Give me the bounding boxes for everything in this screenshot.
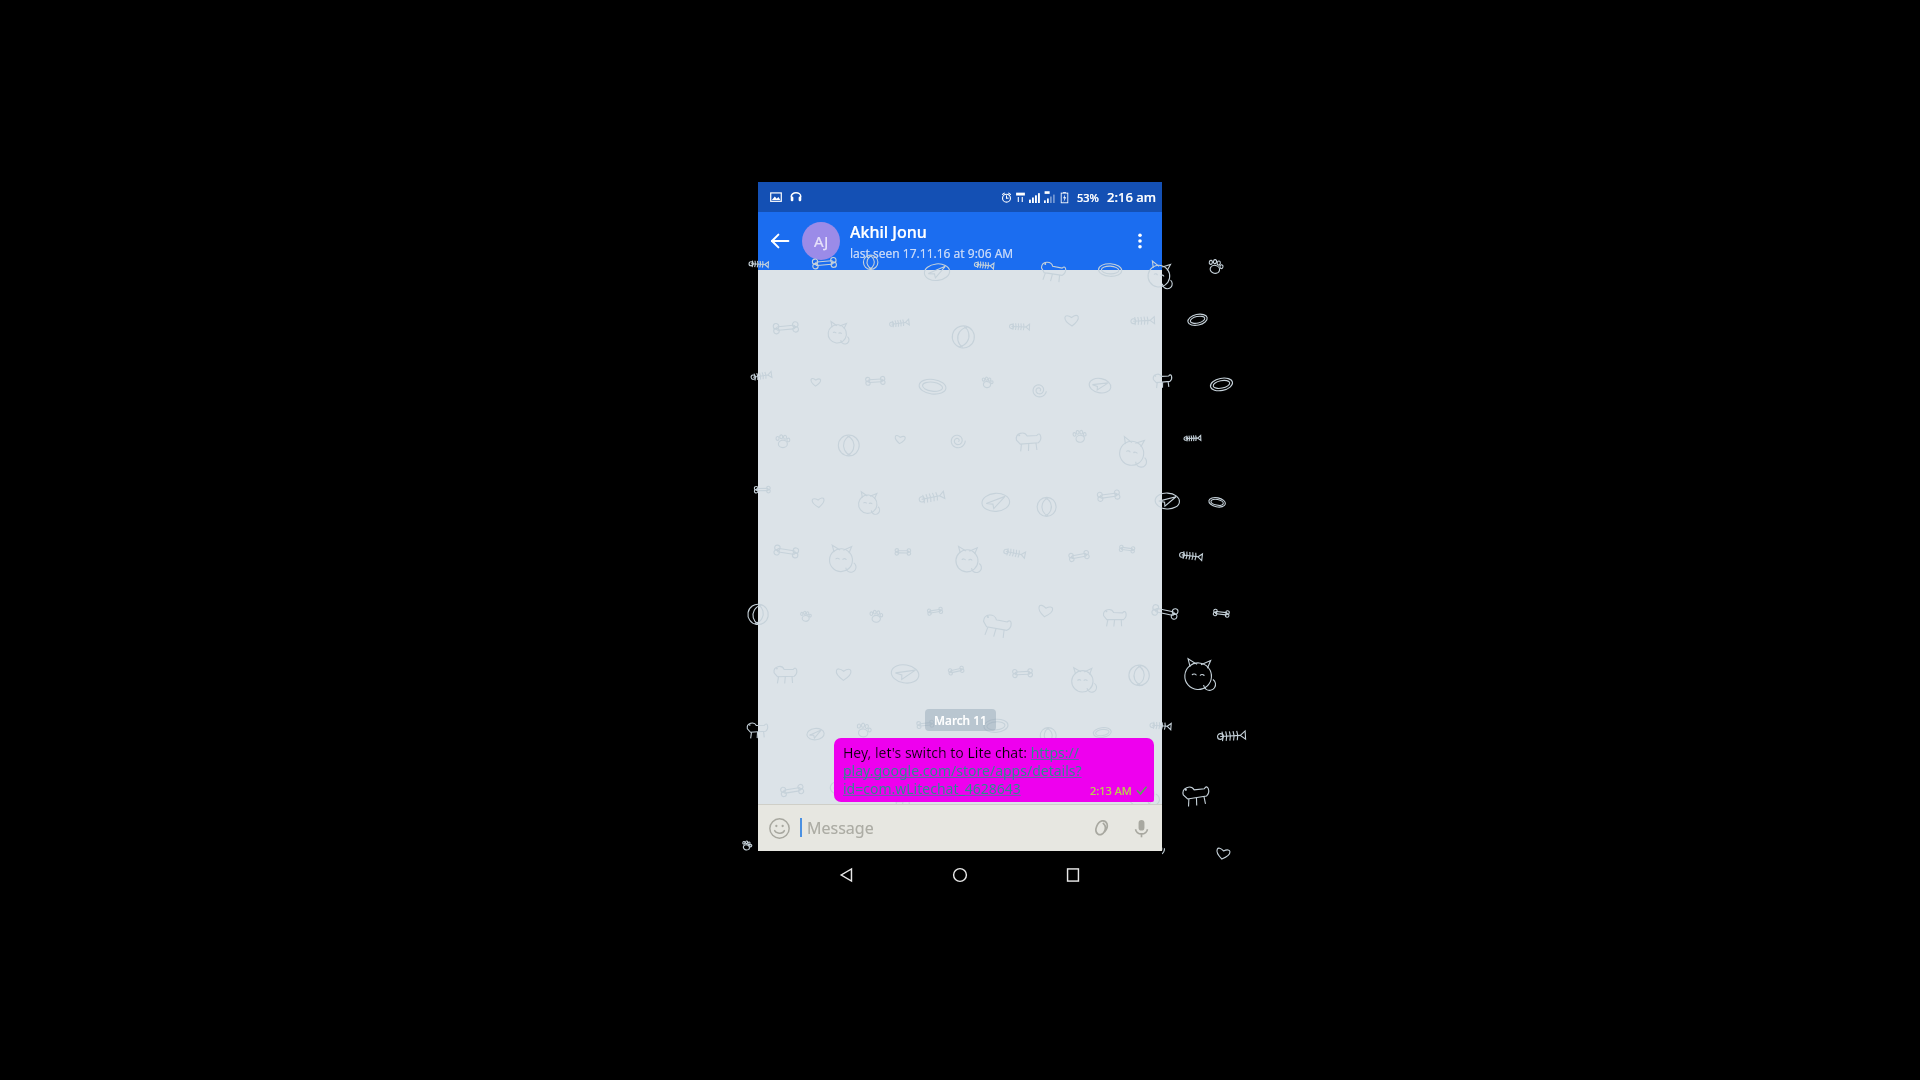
staticText: Message xyxy=(807,817,874,839)
staticText: AJ xyxy=(814,231,829,251)
button[interactable]: Recent apps xyxy=(1049,851,1097,899)
button[interactable]: Voice message xyxy=(1120,807,1162,849)
button[interactable]: Home xyxy=(936,851,984,899)
staticText: 53% xyxy=(1077,190,1099,205)
staticText: Akhil Jonu xyxy=(850,221,927,243)
button[interactable]: Akhil Jonu xyxy=(850,221,1118,261)
button[interactable]: Hey, let's switch to Lite chat: https://… xyxy=(834,738,1154,802)
staticText: 2:13 AM xyxy=(1090,783,1132,798)
button[interactable]: Message xyxy=(807,804,1078,851)
button[interactable]: More options xyxy=(1118,219,1162,263)
button[interactable]: Back xyxy=(823,851,871,899)
button[interactable]: Emoji xyxy=(758,807,800,849)
staticText: 2:16 am xyxy=(1107,188,1156,206)
staticText: Hey, let's switch to Lite chat: https://… xyxy=(843,743,1147,798)
button[interactable]: March 11 xyxy=(934,712,987,728)
staticText: March 11 xyxy=(934,712,987,728)
button[interactable]: Attach xyxy=(1078,807,1120,849)
button[interactable]: Contact avatar xyxy=(802,222,840,260)
staticText: last seen 17.11.16 at 9:06 AM xyxy=(850,245,1014,261)
button[interactable]: Back xyxy=(758,219,802,263)
